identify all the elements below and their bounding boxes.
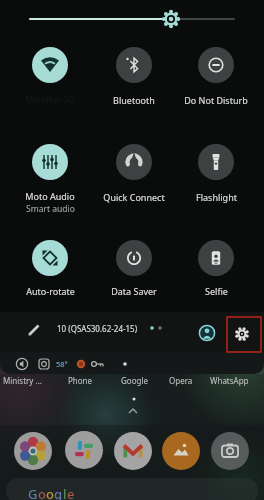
button[interactable] [0, 352, 264, 374]
button[interactable] [229, 313, 261, 350]
button[interactable] [190, 140, 242, 198]
button[interactable] [163, 432, 201, 470]
staticText: Data Saver [111, 285, 157, 297]
staticText: e [67, 485, 75, 500]
staticText: Google [121, 375, 148, 386]
button[interactable] [196, 322, 218, 344]
staticText: l [63, 485, 67, 500]
button[interactable] [65, 432, 103, 470]
staticText: WhatsApp [210, 375, 249, 386]
staticText: Flashlight [196, 191, 237, 203]
staticText: 10 (QSAS30.62-24-15) [57, 323, 138, 334]
button[interactable] [212, 432, 250, 470]
button[interactable] [108, 43, 160, 101]
staticText: g [54, 485, 63, 500]
staticText: Smart audio [26, 203, 75, 215]
button[interactable] [24, 236, 76, 294]
staticText: Phone [68, 375, 93, 386]
button[interactable] [190, 236, 242, 294]
staticText: Opera [169, 375, 193, 386]
button[interactable] [108, 140, 160, 198]
staticText: o [38, 485, 46, 500]
staticText: Moto Audio [25, 190, 75, 202]
staticText: o [46, 485, 54, 500]
staticText: Ministry ... [3, 375, 42, 386]
staticText: Bluetooth [113, 94, 155, 106]
staticText: Auto-rotate [26, 285, 75, 297]
staticText: MotoNet-5G [25, 94, 75, 106]
button[interactable] [108, 236, 160, 294]
button[interactable] [114, 432, 152, 470]
staticText: G [28, 485, 38, 500]
staticText: 58° [56, 359, 68, 369]
staticText: Do Not Disturb [184, 94, 248, 106]
button[interactable] [14, 432, 52, 470]
button[interactable] [6, 478, 258, 500]
button[interactable] [24, 318, 46, 340]
button[interactable] [24, 43, 76, 101]
button[interactable] [190, 43, 242, 101]
staticText: Selfie [205, 285, 228, 297]
button[interactable] [24, 140, 76, 198]
staticText: Quick Connect [103, 191, 165, 203]
